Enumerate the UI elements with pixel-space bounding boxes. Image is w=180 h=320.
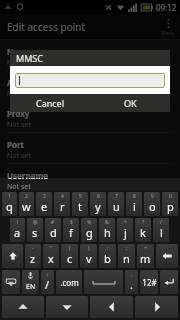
staticText: 4: [61, 193, 64, 200]
staticText: ;: [126, 245, 128, 252]
button[interactable]: 12#: [140, 270, 158, 294]
button[interactable]: 1: [2, 192, 17, 216]
staticText: l: [160, 225, 163, 240]
staticText: +: [144, 245, 147, 252]
button[interactable]: ?: [135, 218, 151, 242]
button[interactable]: 4: [54, 192, 70, 216]
button[interactable]: Shift: [2, 244, 23, 268]
button[interactable]: Proxy: [0, 105, 180, 136]
button[interactable]: @: [27, 218, 43, 242]
staticText: (: [69, 245, 71, 252]
button[interactable]: [15, 73, 165, 88]
staticText: i: [133, 199, 136, 214]
staticText: Password: [7, 201, 46, 212]
staticText: j: [124, 225, 127, 240]
button[interactable]: .com: [56, 270, 82, 294]
staticText: u: [113, 199, 120, 214]
button[interactable]: 6: [90, 192, 106, 216]
button[interactable]: 5: [72, 192, 88, 216]
staticText: Name: [7, 46, 31, 57]
button[interactable]: Down: [46, 296, 88, 318]
staticText: d: [50, 225, 57, 240]
staticText: Not set: [7, 213, 31, 223]
button[interactable]: Menu: [156, 14, 180, 40]
button[interactable]: $: [63, 218, 79, 242]
staticText: Cancel: [36, 97, 65, 109]
button[interactable]: Up: [2, 296, 44, 318]
button[interactable]: +: [137, 244, 154, 268]
button[interactable]: Right: [135, 296, 178, 318]
staticText: Not set: [7, 58, 31, 68]
button[interactable]: Cancel: [10, 94, 90, 112]
staticText: MMSC: [16, 52, 43, 64]
button[interactable]: Voice input: [22, 270, 39, 294]
button[interactable]: Hide keyboard: [2, 270, 20, 294]
button[interactable]: (: [61, 244, 78, 268]
button[interactable]: Username: [0, 167, 180, 198]
staticText: 3: [43, 193, 46, 200]
button[interactable]: Space: [84, 270, 123, 294]
button[interactable]: Password: [0, 198, 180, 229]
staticText: $: [70, 219, 73, 226]
button[interactable]: &: [99, 218, 115, 242]
staticText: 09:12: [156, 2, 177, 13]
button[interactable]: APN: [0, 74, 180, 105]
button[interactable]: 0: [162, 192, 178, 216]
button[interactable]: ;: [118, 244, 135, 268]
button[interactable]: Enter: [160, 270, 178, 294]
staticText: %: [87, 219, 92, 226]
button[interactable]: Port: [0, 136, 180, 167]
button[interactable]: 8: [126, 192, 142, 216]
button[interactable]: !: [10, 218, 25, 242]
staticText: .com: [60, 277, 79, 288]
button[interactable]: Left: [90, 296, 133, 318]
staticText: -: [32, 245, 34, 252]
staticText: /: [160, 219, 162, 226]
button[interactable]: #: [45, 218, 61, 242]
staticText: e: [41, 199, 48, 214]
button[interactable]: 3: [36, 192, 52, 216]
button[interactable]: /: [153, 218, 169, 242]
button[interactable]: ): [80, 244, 97, 268]
staticText: p: [167, 199, 174, 214]
staticText: :: [107, 245, 109, 252]
staticText: z: [30, 251, 36, 266]
button[interactable]: ;: [41, 270, 54, 294]
staticText: t: [78, 199, 82, 214]
button[interactable]: 2: [19, 192, 34, 216]
staticText: b: [104, 251, 111, 266]
button[interactable]: *: [117, 218, 133, 242]
staticText: &: [105, 219, 109, 226]
staticText: 1: [8, 193, 11, 200]
staticText: 5: [79, 193, 82, 200]
staticText: /: [45, 277, 50, 292]
button[interactable]: ": [43, 244, 59, 268]
staticText: 7: [115, 193, 118, 200]
staticText: ;: [47, 271, 49, 278]
staticText: o: [149, 199, 156, 214]
staticText: APN: [7, 77, 25, 88]
staticText: Edit access point: [7, 20, 86, 34]
staticText: #: [51, 219, 55, 226]
staticText: ): [88, 245, 90, 252]
staticText: 0: [169, 193, 172, 200]
staticText: c: [67, 251, 73, 266]
button[interactable]: OK: [90, 94, 170, 112]
staticText: ?: [142, 219, 145, 226]
staticText: Username: [7, 170, 48, 181]
button[interactable]: Backspace: [156, 244, 178, 268]
button[interactable]: ,: [125, 270, 138, 294]
staticText: Port: [7, 139, 25, 150]
staticText: s: [32, 225, 38, 240]
button[interactable]: %: [81, 218, 97, 242]
staticText: Menu: [161, 30, 175, 37]
staticText: f: [69, 225, 73, 240]
button[interactable]: Name: [0, 43, 180, 74]
button[interactable]: 7: [108, 192, 124, 216]
button[interactable]: -: [25, 244, 41, 268]
staticText: 9: [151, 193, 154, 200]
button[interactable]: 9: [144, 192, 160, 216]
staticText: y: [95, 199, 101, 214]
button[interactable]: :: [99, 244, 116, 268]
staticText: h: [104, 225, 111, 240]
